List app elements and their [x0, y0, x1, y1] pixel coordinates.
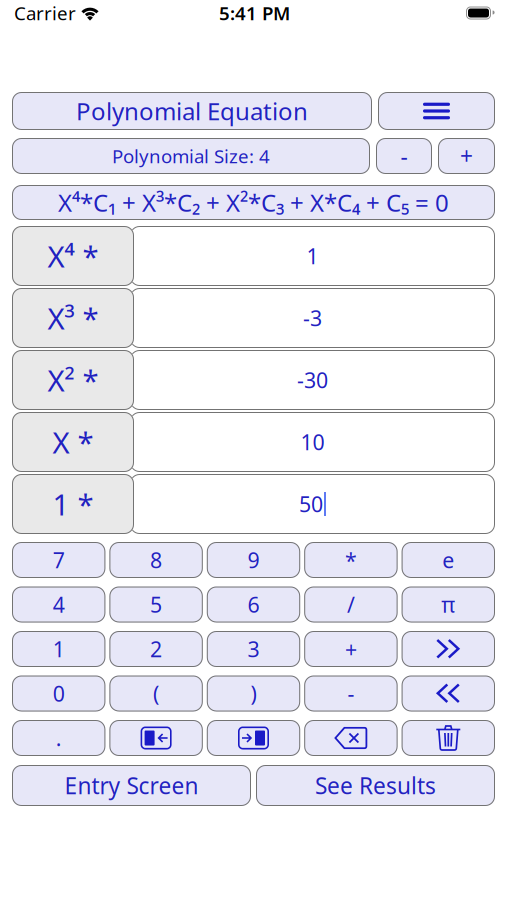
button[interactable]: ( [109, 675, 203, 711]
button[interactable]: Polynomial Size: 4 [12, 138, 370, 174]
staticText: X² * [47, 360, 98, 399]
button[interactable]: 6 [207, 586, 300, 622]
staticText: π [441, 590, 455, 619]
button[interactable]: Jump to end [207, 720, 300, 756]
button[interactable]: 9 [207, 542, 300, 578]
staticText: 5:41 PM [219, 1, 290, 25]
button[interactable]: X⁴*C₁ + X³*C₂ + X²*C₃ + X*C₄ + C₅ = 0 [12, 185, 495, 220]
staticText: 7 [53, 546, 65, 574]
staticText: 10 [300, 428, 324, 456]
button[interactable]: Delete [304, 720, 398, 756]
button[interactable]: Coefficient value 10 [130, 412, 495, 472]
staticText: . [56, 724, 62, 752]
staticText: ( [153, 679, 159, 708]
staticText: 9 [247, 546, 259, 574]
button[interactable]: Move right [402, 631, 495, 667]
button[interactable]: Coefficient X² * [12, 350, 134, 410]
button[interactable]: Coefficient X³ * [12, 288, 134, 348]
button[interactable]: Decrease size [376, 138, 432, 174]
staticText: 0 [53, 679, 65, 708]
button[interactable]: Increase size [438, 138, 495, 174]
staticText: / [347, 590, 355, 619]
staticText: 1 [53, 635, 65, 663]
staticText: Polynomial Size: 4 [112, 144, 270, 168]
staticText: -30 [297, 366, 328, 394]
staticText: -3 [303, 304, 322, 332]
staticText: - [400, 141, 407, 171]
button[interactable]: Coefficient value -30 [130, 350, 495, 410]
staticText: Entry Screen [64, 770, 198, 800]
staticText: ) [250, 679, 256, 708]
button[interactable]: 7 [12, 542, 105, 578]
button[interactable]: . [12, 720, 105, 756]
button[interactable]: Coefficient value 1 [130, 226, 495, 286]
staticText: - [347, 679, 354, 708]
staticText: X * [52, 422, 93, 461]
button[interactable]: See Results [256, 765, 495, 806]
button[interactable]: 3 [207, 631, 300, 667]
staticText: 8 [150, 546, 162, 574]
staticText: 1 * [52, 484, 93, 523]
staticText: X⁴*C₁ + X³*C₂ + X²*C₃ + X*C₄ + C₅ = 0 [58, 187, 449, 218]
staticText: 1 [306, 242, 318, 270]
button[interactable]: Coefficient 1 * [12, 474, 134, 534]
button[interactable]: Move left [402, 675, 495, 711]
button[interactable]: Menu [378, 92, 495, 130]
staticText: 4 [53, 590, 65, 619]
staticText: Carrier [14, 1, 76, 25]
staticText: 2 [150, 635, 162, 663]
button[interactable]: π [402, 586, 495, 622]
button[interactable]: / [304, 586, 398, 622]
button[interactable]: 2 [109, 631, 203, 667]
button[interactable]: 1 [12, 631, 105, 667]
staticText: * [345, 546, 357, 574]
staticText: Polynomial Equation [76, 95, 308, 127]
button[interactable]: + [304, 631, 398, 667]
staticText: 50 [299, 490, 323, 518]
staticText: + [345, 635, 357, 663]
button[interactable]: Jump to start [109, 720, 203, 756]
staticText: X³ * [47, 298, 98, 337]
button[interactable]: e [402, 542, 495, 578]
button[interactable]: 4 [12, 586, 105, 622]
staticText: 5 [150, 590, 162, 619]
button[interactable]: Polynomial Equation [12, 92, 372, 130]
button[interactable]: ) [207, 675, 300, 711]
button[interactable]: 0 [12, 675, 105, 711]
button[interactable]: Entry Screen [12, 765, 251, 806]
staticText: 6 [247, 590, 259, 619]
button[interactable]: Coefficient X * [12, 412, 134, 472]
staticText: + [460, 141, 473, 171]
staticText: X⁴ * [47, 236, 98, 275]
staticText: 3 [247, 635, 259, 663]
button[interactable]: 5 [109, 586, 203, 622]
staticText: e [442, 546, 454, 574]
button[interactable]: Coefficient value 50 [130, 474, 495, 534]
button[interactable]: Clear [402, 720, 495, 756]
button[interactable]: - [304, 675, 398, 711]
button[interactable]: * [304, 542, 398, 578]
staticText: See Results [315, 770, 436, 800]
button[interactable]: 8 [109, 542, 203, 578]
button[interactable]: Coefficient value -3 [130, 288, 495, 348]
button[interactable]: Coefficient X⁴ * [12, 226, 134, 286]
